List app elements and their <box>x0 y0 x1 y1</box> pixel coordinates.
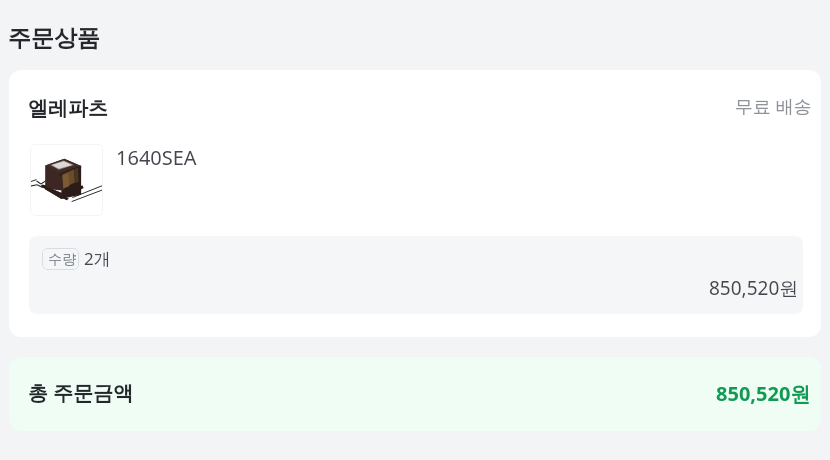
button[interactable]: 총 주문금액 <box>9 357 821 431</box>
staticText: 수량 <box>48 251 76 269</box>
staticText: 무료 배송 <box>735 94 812 119</box>
staticText: 엘레파츠 <box>28 96 108 121</box>
staticText: 850,520원 <box>709 275 799 301</box>
staticText: 850,520원 <box>716 380 811 407</box>
staticText: 1640SEA <box>116 144 197 171</box>
staticText: 2개 <box>84 247 111 270</box>
staticText: 총 주문금액 <box>28 379 134 406</box>
button[interactable]: 엘레파츠 <box>9 70 821 337</box>
staticText: 주문상품 <box>8 24 100 53</box>
button[interactable]: 1640SEA 상품 이미지 <box>30 144 103 216</box>
